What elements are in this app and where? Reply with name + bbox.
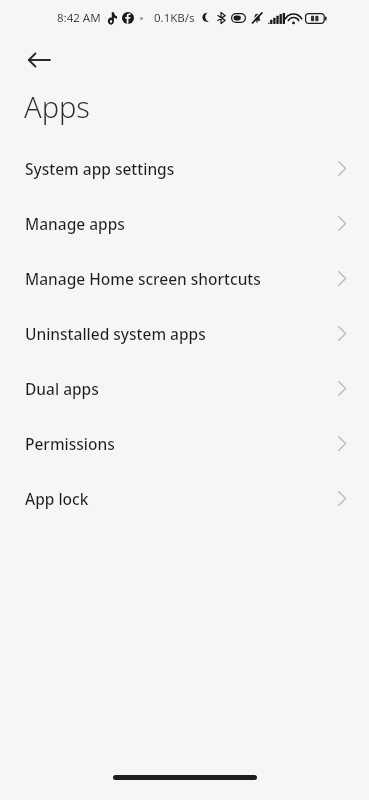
button[interactable]: Uninstalled system apps <box>0 306 369 361</box>
staticText: App lock <box>25 488 337 509</box>
staticText: Permissions <box>25 433 337 454</box>
staticText: Uninstalled system apps <box>25 323 337 344</box>
staticText: Dual apps <box>25 378 337 399</box>
button[interactable]: Manage Home screen shortcuts <box>0 251 369 306</box>
button[interactable]: Manage apps <box>0 196 369 251</box>
button[interactable]: System app settings <box>0 141 369 196</box>
button[interactable]: Permissions <box>0 416 369 471</box>
staticText: Apps <box>24 87 90 126</box>
staticText: System app settings <box>25 158 337 179</box>
staticText: Manage apps <box>25 213 337 234</box>
staticText: Manage Home screen shortcuts <box>25 268 337 289</box>
staticText: 0.1KB/s <box>154 10 195 26</box>
button[interactable]: Dual apps <box>0 361 369 416</box>
staticText: 8:42 AM <box>57 10 101 26</box>
button[interactable]: Back <box>15 36 63 84</box>
button[interactable]: App lock <box>0 471 369 526</box>
